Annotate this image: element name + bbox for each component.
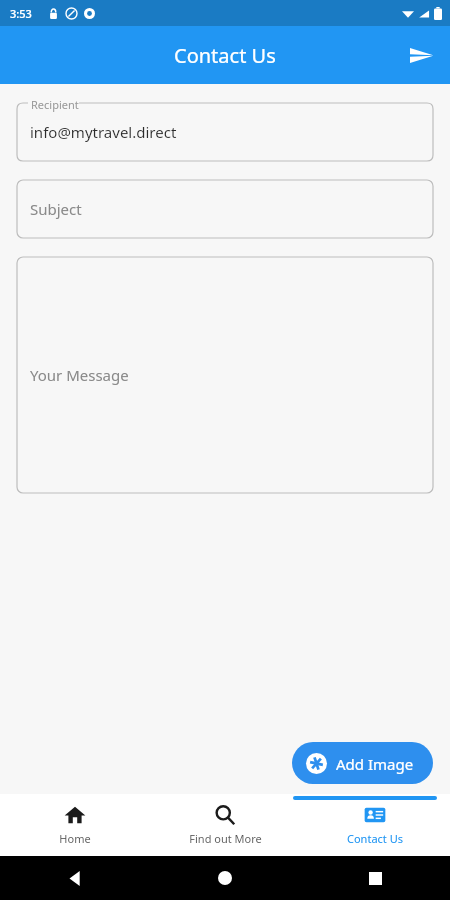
button[interactable]: Contact Us [300, 794, 450, 856]
button[interactable]: Your Message [17, 257, 433, 493]
button[interactable]: Find out More [150, 794, 300, 856]
staticText: Recipient [31, 97, 79, 112]
button[interactable]: Recent apps [358, 861, 392, 895]
staticText: Contact Us [174, 42, 276, 69]
button[interactable]: Add Image [292, 742, 433, 784]
staticText: Home [59, 831, 91, 846]
staticText: Your Message [30, 365, 129, 385]
button[interactable]: Home [0, 794, 150, 856]
staticText: info@mytravel.direct [30, 122, 177, 142]
staticText: Add Image [336, 754, 414, 774]
button[interactable]: Home [208, 861, 242, 895]
staticText: Subject [30, 199, 82, 219]
staticText: Contact Us [347, 831, 403, 846]
staticText: 3:53 [10, 6, 32, 21]
button[interactable]: Back [58, 861, 92, 895]
staticText: Find out More [189, 831, 262, 846]
button[interactable]: Send [398, 32, 444, 78]
button[interactable]: Recipient [17, 95, 433, 161]
button[interactable]: Subject [17, 180, 433, 238]
